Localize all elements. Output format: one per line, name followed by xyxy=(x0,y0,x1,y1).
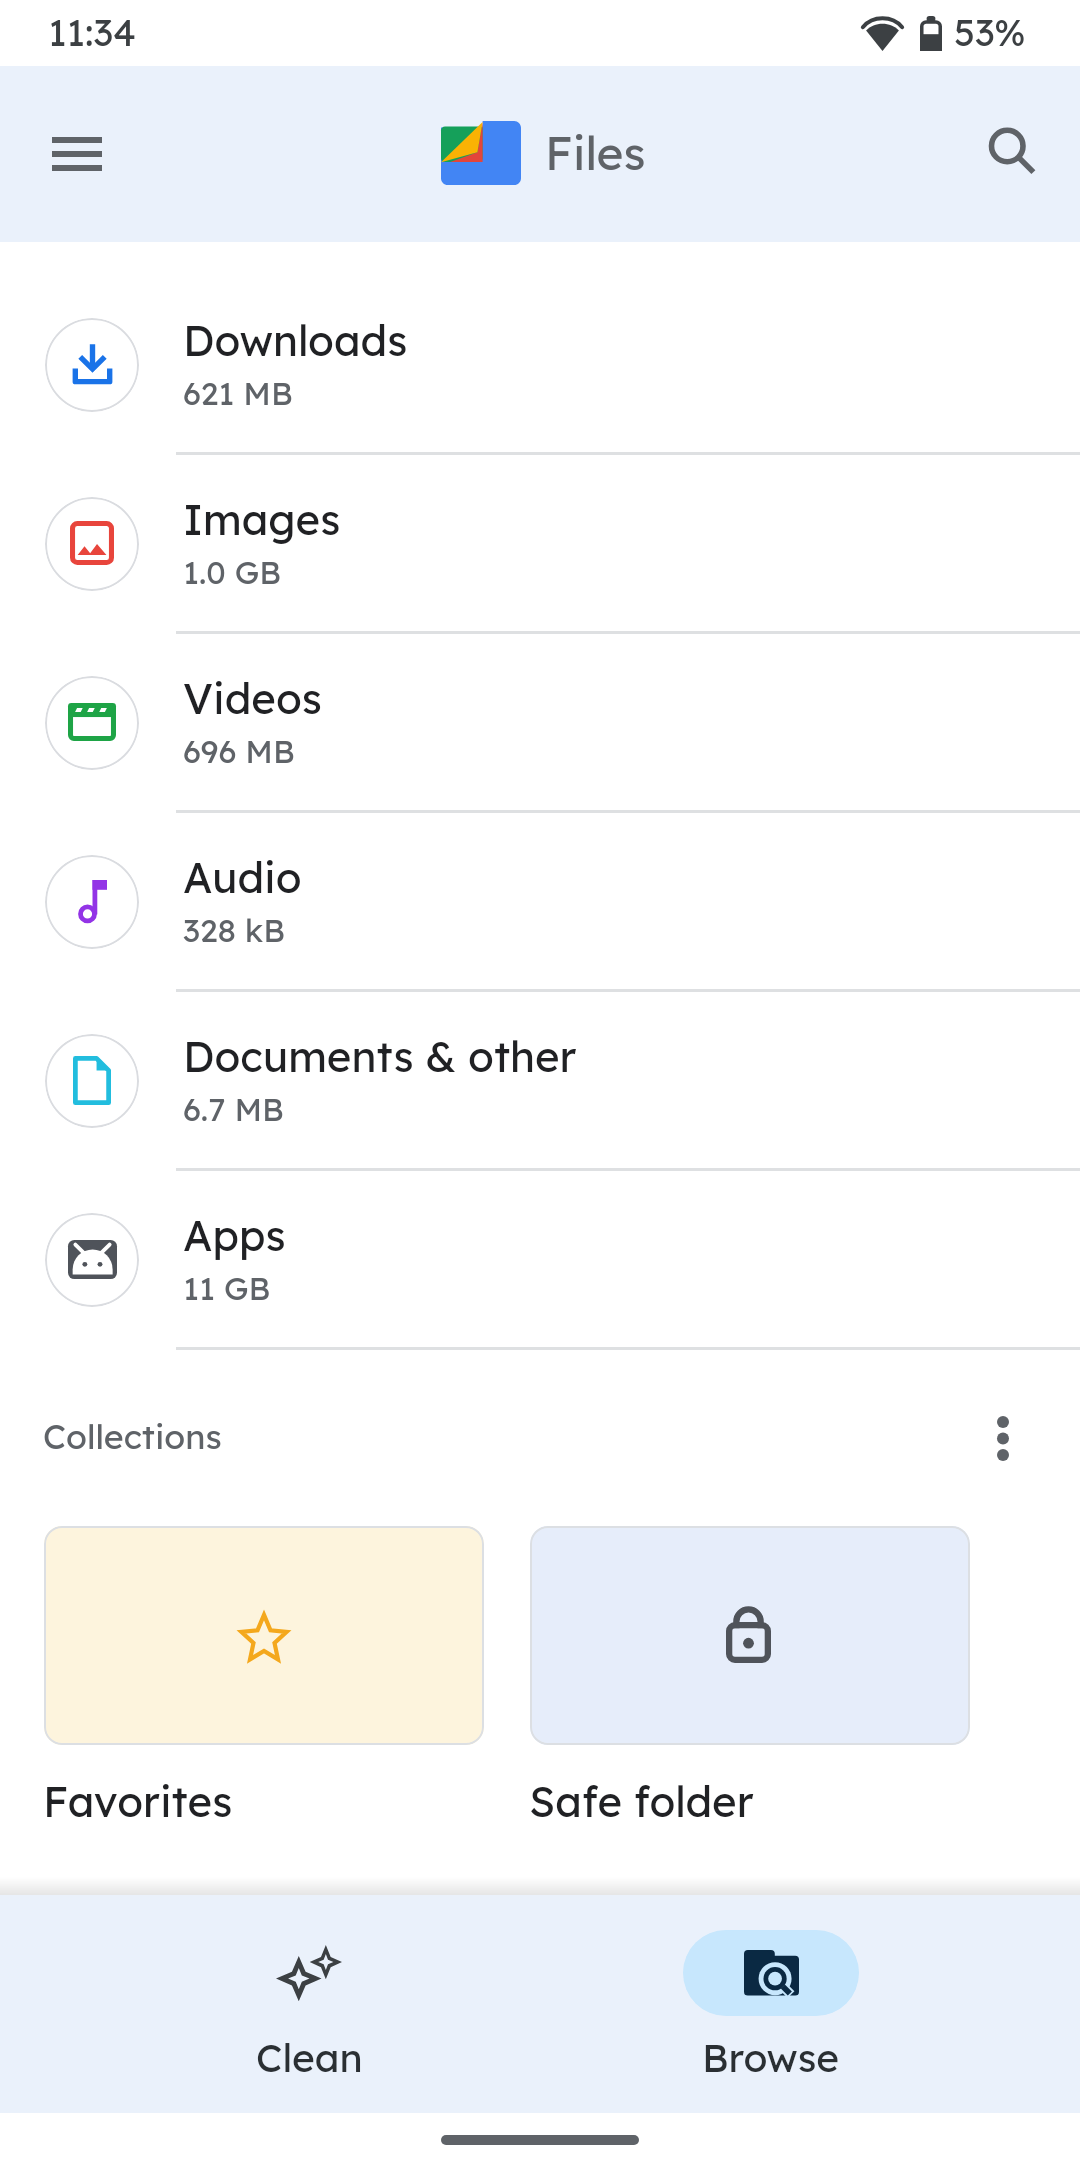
staticText: Safe folder xyxy=(529,1775,754,1828)
button[interactable]: Documents & other xyxy=(0,992,1080,1171)
staticText: 621 MB xyxy=(183,373,293,413)
staticText: Browse xyxy=(702,2033,840,2082)
staticText: 328 kB xyxy=(183,910,285,950)
button[interactable]: Videos xyxy=(0,634,1080,813)
button[interactable]: Favorites xyxy=(44,1526,484,1828)
button[interactable]: Audio xyxy=(0,813,1080,992)
button[interactable]: Search xyxy=(965,106,1061,202)
staticText: 696 MB xyxy=(183,731,295,771)
button[interactable]: Downloads xyxy=(0,276,1080,455)
staticText: 11 GB xyxy=(183,1268,271,1308)
staticText: Clean xyxy=(256,2033,363,2082)
staticText: 53% xyxy=(954,9,1026,55)
button[interactable]: Safe folder xyxy=(530,1526,970,1828)
staticText: Favorites xyxy=(43,1775,233,1828)
staticText: Apps xyxy=(183,1209,286,1262)
staticText: Documents & other xyxy=(183,1030,577,1083)
button[interactable]: Clean xyxy=(78,1897,540,2115)
staticText: Audio xyxy=(183,851,302,904)
staticText: Images xyxy=(183,493,341,546)
button[interactable]: Browse xyxy=(540,1897,1002,2115)
staticText: 1.0 GB xyxy=(183,552,281,592)
button[interactable]: Open navigation menu xyxy=(29,106,125,202)
staticText: 6.7 MB xyxy=(183,1089,284,1129)
button[interactable]: Images xyxy=(0,455,1080,634)
button[interactable]: Apps xyxy=(0,1171,1080,1350)
staticText: Videos xyxy=(183,672,322,725)
button[interactable]: More options xyxy=(959,1394,1047,1482)
staticText: Files xyxy=(545,124,646,182)
staticText: Downloads xyxy=(183,314,408,367)
staticText: 11:34 xyxy=(48,9,136,55)
staticText: Collections xyxy=(43,1415,222,1458)
